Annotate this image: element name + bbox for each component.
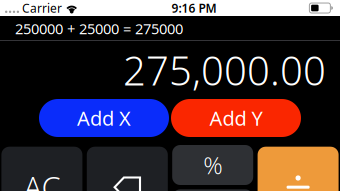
button[interactable]: Add X: [39, 99, 169, 137]
staticText: Add Y: [209, 105, 262, 131]
button[interactable]: ±: [172, 189, 253, 191]
button[interactable]: Delete: [87, 147, 168, 191]
staticText: Carrier: [19, 0, 65, 16]
button[interactable]: %: [172, 145, 253, 185]
staticText: %: [203, 149, 222, 181]
staticText: 9:16 PM: [171, 0, 216, 16]
button[interactable]: Add Y: [171, 99, 301, 137]
staticText: AC: [23, 167, 60, 191]
staticText: 275,000.00: [123, 43, 326, 96]
staticText: Add X: [77, 105, 131, 131]
staticText: 250000 + 25000 = 275000: [15, 19, 183, 38]
button[interactable]: Divide: [258, 147, 339, 191]
button[interactable]: AC: [1, 147, 82, 191]
